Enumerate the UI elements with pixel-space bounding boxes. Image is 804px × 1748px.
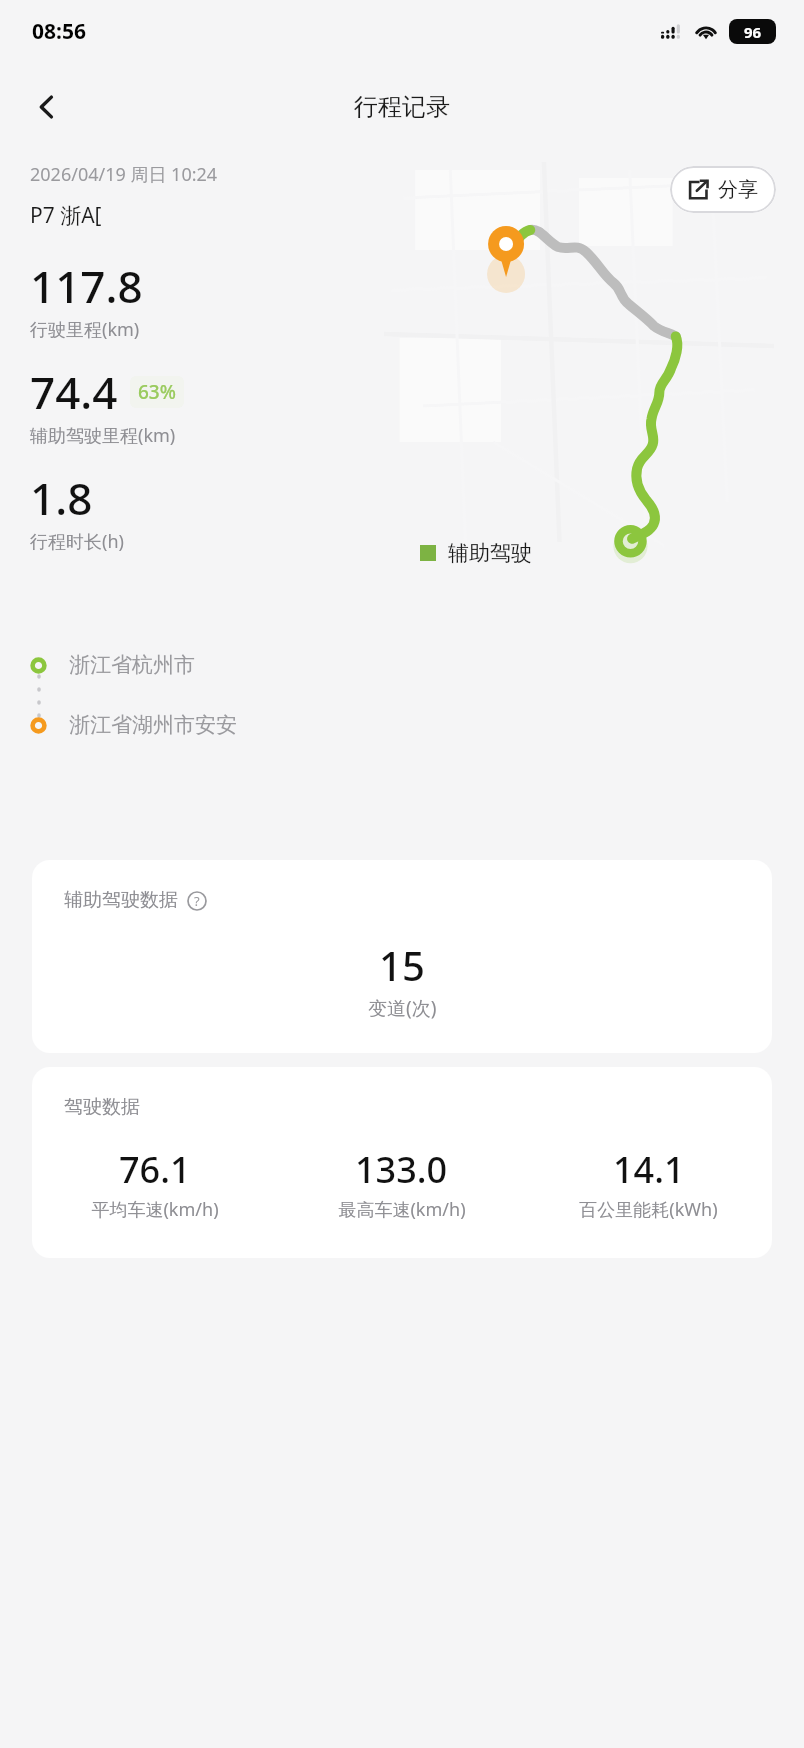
staticText: 浙江省杭州市 xyxy=(69,652,195,678)
staticText: 15 xyxy=(379,938,425,992)
staticText: 最高车速(km/h) xyxy=(338,1197,466,1222)
staticText: 74.4 xyxy=(30,362,118,422)
staticText: 08:56 xyxy=(32,17,86,46)
staticText: 行程记录 xyxy=(354,92,450,122)
staticText: 辅助驾驶里程(km) xyxy=(30,423,176,448)
staticText: 117.8 xyxy=(30,256,143,316)
staticText: P7 浙A[ xyxy=(30,201,102,230)
button[interactable]: 驾驶数据 xyxy=(32,1067,772,1258)
staticText: 辅助驾驶 xyxy=(448,540,532,566)
button[interactable]: Back xyxy=(20,80,74,134)
staticText: 133.0 xyxy=(355,1145,448,1194)
staticText: 分享 xyxy=(718,177,758,202)
staticText: 63% xyxy=(138,379,176,405)
staticText: 96 xyxy=(744,22,762,42)
staticText: 百公里能耗(kWh) xyxy=(579,1197,718,1222)
staticText: 1.8 xyxy=(30,468,93,528)
staticText: 平均车速(km/h) xyxy=(91,1197,219,1222)
staticText: 行驶里程(km) xyxy=(30,317,140,342)
button[interactable]: 辅助驾驶数据 xyxy=(32,860,772,1053)
staticText: 行程时长(h) xyxy=(30,529,124,554)
staticText: 2026/04/19 周日 10:24 xyxy=(30,162,218,187)
staticText: 浙江省湖州市安安 xyxy=(69,712,237,738)
staticText: 辅助驾驶数据 xyxy=(64,888,178,912)
button[interactable]: 分享 xyxy=(670,166,776,213)
button[interactable]: Info xyxy=(186,890,207,911)
staticText: ? xyxy=(194,892,200,910)
staticText: 变道(次) xyxy=(368,995,437,1021)
staticText: 76.1 xyxy=(119,1145,191,1194)
staticText: 14.1 xyxy=(613,1145,685,1194)
staticText: 驾驶数据 xyxy=(64,1095,140,1119)
